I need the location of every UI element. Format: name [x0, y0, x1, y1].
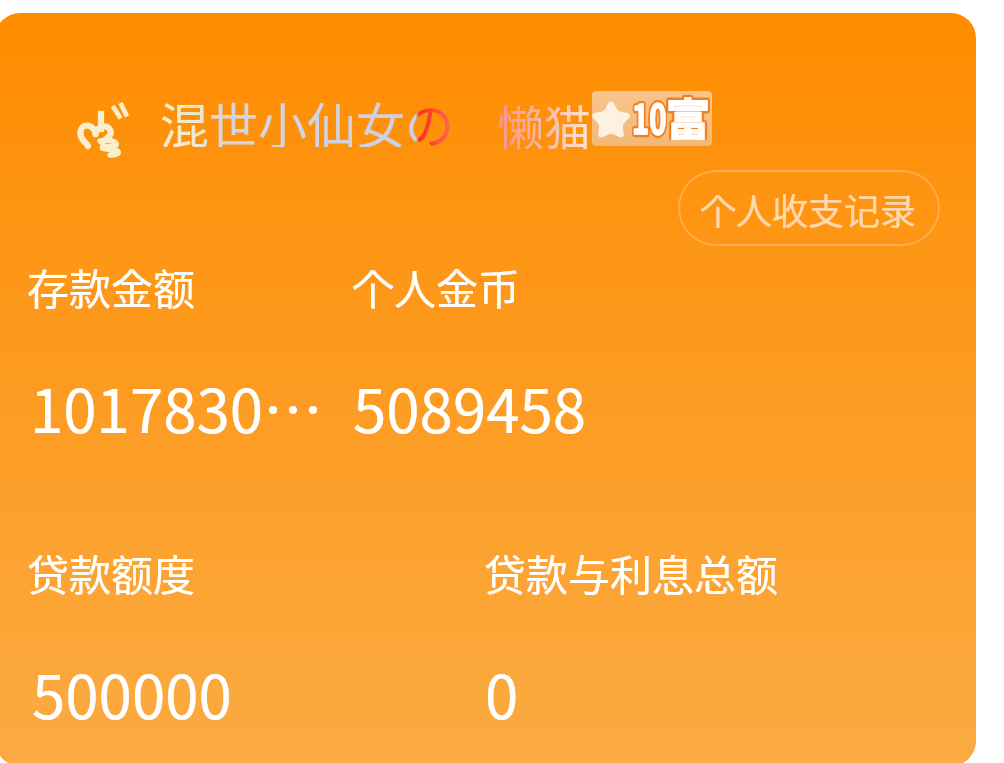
staticText: 混世小仙女の	[160, 87, 455, 147]
staticText: 10	[632, 91, 667, 143]
other: Profile decoration	[76, 101, 130, 157]
staticText: 1017830⋯	[30, 363, 324, 450]
staticText: 富	[666, 91, 710, 140]
button[interactable]: Wealth level 10 badge	[592, 91, 712, 146]
button[interactable]: 混世小仙女の	[158, 96, 458, 156]
staticText: 贷款与利息总额	[484, 542, 779, 603]
staticText: 存款金额	[27, 256, 196, 317]
staticText: 富	[666, 91, 710, 140]
staticText: 贷款额度	[27, 542, 196, 603]
staticText: 个人收支记录	[700, 183, 917, 235]
staticText: 0	[485, 649, 519, 736]
staticText: 个人金币	[352, 256, 521, 317]
staticText: 5089458	[353, 363, 587, 450]
staticText: 10	[632, 91, 667, 143]
staticText: 懒猫	[497, 90, 591, 158]
button[interactable]: 个人收支记录	[678, 170, 940, 246]
staticText: 500000	[32, 649, 232, 736]
